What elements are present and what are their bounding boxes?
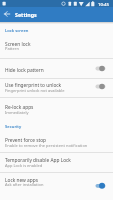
staticText: Prevent force stop bbox=[5, 137, 47, 144]
button[interactable]: Temporarily disable App Lock bbox=[0, 153, 113, 172]
staticText: Screen lock bbox=[5, 41, 31, 48]
button[interactable]: Screen lock bbox=[0, 37, 113, 59]
staticText: Lock screen bbox=[5, 28, 29, 34]
button[interactable]: Re-lock apps bbox=[0, 98, 113, 118]
button[interactable]: Prevent force stop bbox=[0, 132, 113, 153]
staticText: Use fingerprint to unlock bbox=[5, 82, 62, 89]
staticText: Ask after installation bbox=[5, 182, 44, 187]
staticText: Re-lock apps bbox=[5, 104, 34, 111]
staticText: Pattern bbox=[5, 46, 19, 51]
staticText: Hide lock pattern bbox=[5, 67, 44, 74]
staticText: Fingerprint unlock not available bbox=[5, 88, 65, 93]
staticText: Security bbox=[5, 124, 22, 130]
button[interactable]: Use fingerprint to unlock bbox=[0, 79, 113, 97]
staticText: Temporarily disable App Lock bbox=[5, 157, 71, 164]
staticText: 10:45 bbox=[98, 1, 109, 7]
button[interactable] bbox=[2, 9, 12, 19]
button[interactable]: Hide lock pattern bbox=[0, 59, 113, 78]
staticText: Settings bbox=[15, 11, 37, 18]
staticText: Enable to remove the persistent notifica… bbox=[5, 143, 88, 148]
staticText: Immediately bbox=[5, 110, 29, 115]
staticText: Lock new apps bbox=[5, 177, 39, 184]
staticText: App Lock is enabled bbox=[5, 163, 43, 168]
button[interactable]: Lock new apps bbox=[0, 173, 113, 200]
